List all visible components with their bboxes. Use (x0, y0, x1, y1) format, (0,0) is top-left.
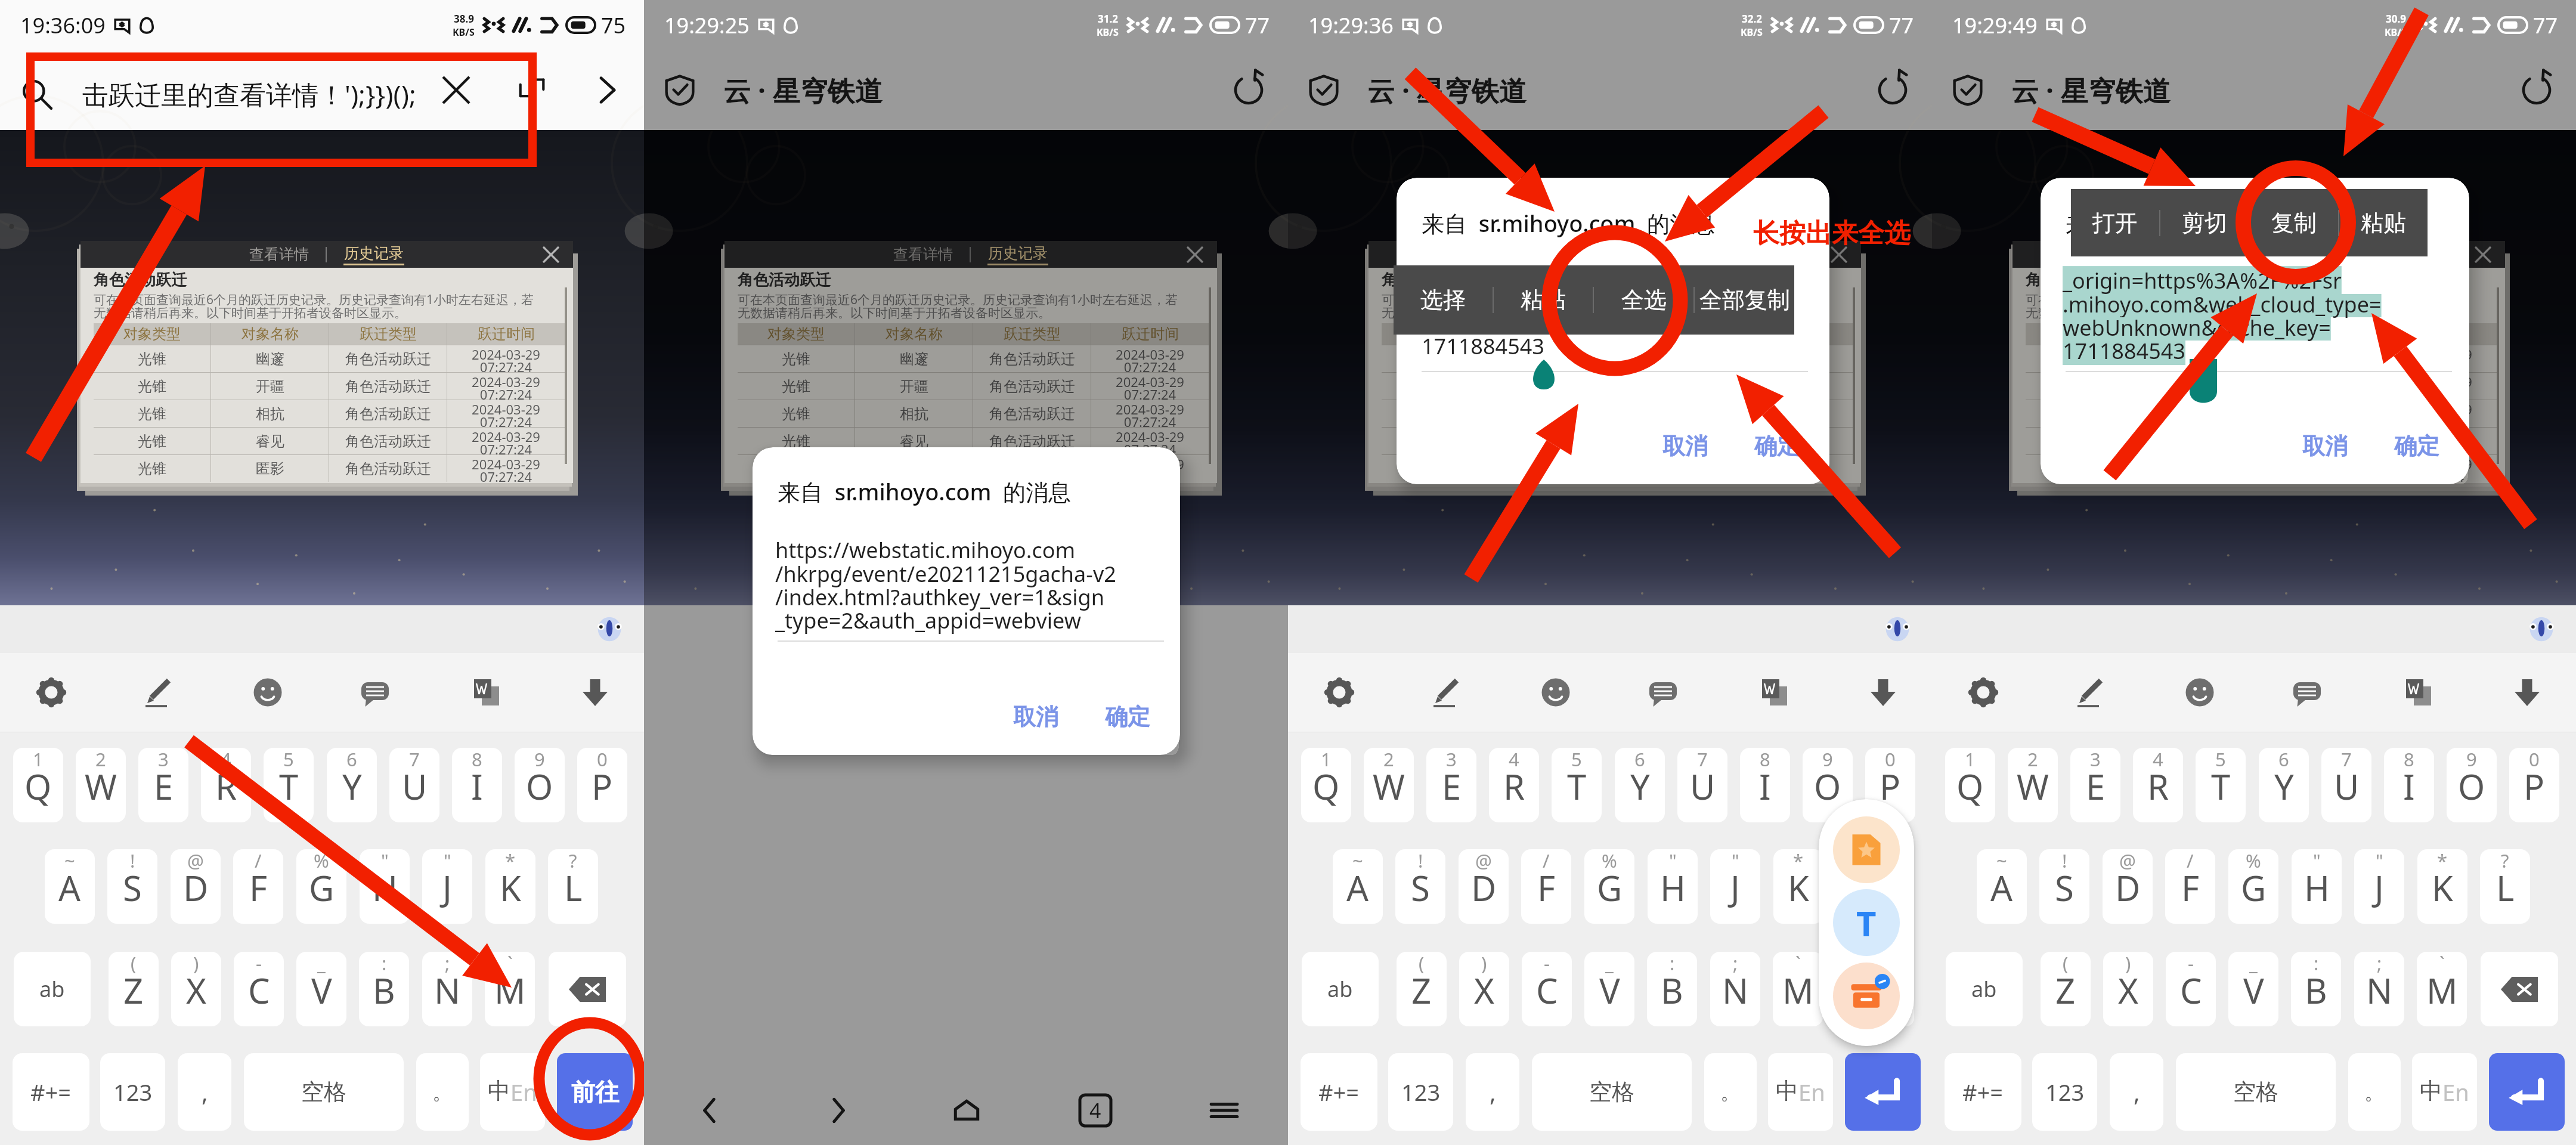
button[interactable]: Settings (1956, 658, 2010, 727)
button[interactable]: Favorites (1833, 816, 1900, 883)
button[interactable]: ab (1946, 952, 2023, 1026)
button[interactable]: Home (938, 1082, 995, 1139)
button[interactable]: ; (2354, 952, 2404, 1026)
button[interactable]: ) (2103, 952, 2153, 1026)
button[interactable]: 9 (515, 748, 565, 822)
button[interactable]: 1 (13, 748, 63, 822)
button[interactable]: 123 (100, 1053, 165, 1131)
button[interactable]: Handwriting (133, 658, 187, 727)
button[interactable]: 全选 (1594, 265, 1693, 335)
button[interactable]: Hide keyboard (2500, 658, 2554, 727)
button[interactable]: ab (14, 952, 91, 1026)
button[interactable]: Tabs (1067, 1082, 1124, 1139)
button[interactable]: ` (2417, 952, 2467, 1026)
button[interactable]: - (1522, 952, 1572, 1026)
button[interactable]: / (2165, 849, 2215, 924)
button[interactable]: 123 (2032, 1053, 2097, 1131)
button[interactable]: #+= (1301, 1053, 1377, 1131)
button[interactable]: ! (1395, 849, 1445, 924)
button[interactable]: ` (485, 952, 535, 1026)
button[interactable]: 1 (1945, 748, 1995, 822)
button[interactable]: : (359, 952, 409, 1026)
button[interactable]: 全部复制 (1695, 265, 1794, 335)
button[interactable]: * (485, 849, 535, 924)
button[interactable]: 4 (1489, 748, 1539, 822)
button[interactable]: 粘贴 (2339, 189, 2428, 256)
button[interactable]: Scan code (512, 70, 552, 110)
button[interactable]: " (2354, 849, 2404, 924)
button[interactable]: 3 (138, 748, 188, 822)
button[interactable]: 3 (1426, 748, 1476, 822)
button[interactable]: ) (1459, 952, 1509, 1026)
button[interactable]: ; (422, 952, 472, 1026)
button[interactable]: Refresh (2515, 69, 2558, 112)
button[interactable]: Forward (809, 1082, 866, 1139)
button[interactable]: Refresh (1227, 69, 1270, 112)
button[interactable]: 5 (1552, 748, 1602, 822)
button[interactable]: * (2417, 849, 2467, 924)
button[interactable]: / (1521, 849, 1571, 924)
button[interactable]: Phrases (2280, 658, 2334, 727)
button[interactable]: 123 (1388, 1053, 1453, 1131)
button[interactable]: _ (296, 952, 346, 1026)
button[interactable]: 0 (1865, 748, 1915, 822)
button[interactable]: 7 (1677, 748, 1727, 822)
button[interactable]: , (1466, 1053, 1519, 1131)
button[interactable]: 4 (2133, 748, 2183, 822)
button[interactable]: 7 (389, 748, 439, 822)
button[interactable]: 确定 (1095, 697, 1160, 737)
button[interactable]: 5 (2196, 748, 2246, 822)
button[interactable]: Phrases (348, 658, 402, 727)
button[interactable]: 空格 (2176, 1053, 2336, 1131)
button[interactable]: Enter (1845, 1053, 1921, 1131)
button[interactable]: 中 (1768, 1053, 1833, 1131)
button[interactable]: " (360, 849, 410, 924)
button[interactable]: @ (171, 849, 221, 924)
button[interactable]: % (1584, 849, 1634, 924)
button[interactable]: ? (2480, 849, 2530, 924)
button[interactable]: 6 (327, 748, 377, 822)
button[interactable]: ; (1710, 952, 1760, 1026)
button[interactable]: 1 (1301, 748, 1351, 822)
button[interactable]: % (296, 849, 346, 924)
button[interactable]: ( (109, 952, 159, 1026)
button[interactable]: 中 (2412, 1053, 2477, 1131)
button[interactable]: 6 (1615, 748, 1665, 822)
button[interactable]: ? (548, 849, 598, 924)
button[interactable]: @ (2103, 849, 2153, 924)
button[interactable]: Emoji (2173, 658, 2227, 727)
button[interactable]: 2 (1364, 748, 1414, 822)
button[interactable]: 中 (480, 1053, 545, 1131)
button[interactable]: 8 (1740, 748, 1790, 822)
button[interactable]: Search (17, 74, 57, 114)
button[interactable]: 确定 (2385, 426, 2449, 466)
button[interactable]: ( (2041, 952, 2091, 1026)
button[interactable]: Hide keyboard (568, 658, 622, 727)
button[interactable]: Settings (1312, 658, 1366, 727)
button[interactable]: Go (587, 70, 628, 110)
button[interactable]: Backspace (2481, 952, 2558, 1026)
button[interactable]: 2 (76, 748, 126, 822)
button[interactable]: Secure site (1302, 69, 1345, 112)
button[interactable]: Handwriting (2065, 658, 2119, 727)
button[interactable]: Settings (24, 658, 78, 727)
button[interactable]: ` (1773, 952, 1823, 1026)
button[interactable]: 3 (2070, 748, 2120, 822)
button[interactable]: 剪切 (2160, 189, 2249, 256)
button[interactable]: % (2228, 849, 2278, 924)
button[interactable]: ab (1302, 952, 1379, 1026)
button[interactable]: 9 (1803, 748, 1853, 822)
button[interactable]: Go (557, 1053, 633, 1131)
button[interactable]: Backspace (549, 952, 626, 1026)
button[interactable]: Refresh (1871, 69, 1914, 112)
button[interactable]: 复制 (2250, 189, 2338, 256)
button[interactable]: 2 (2008, 748, 2058, 822)
button[interactable]: , (178, 1053, 231, 1131)
button[interactable]: " (1648, 849, 1698, 924)
button[interactable]: 取消 (1653, 426, 1717, 466)
button[interactable]: 取消 (2293, 426, 2357, 466)
button[interactable]: ? (1836, 849, 1886, 924)
button[interactable]: Secure site (1946, 69, 1989, 112)
button[interactable]: 0 (2509, 748, 2559, 822)
button[interactable]: Documents (460, 658, 513, 727)
